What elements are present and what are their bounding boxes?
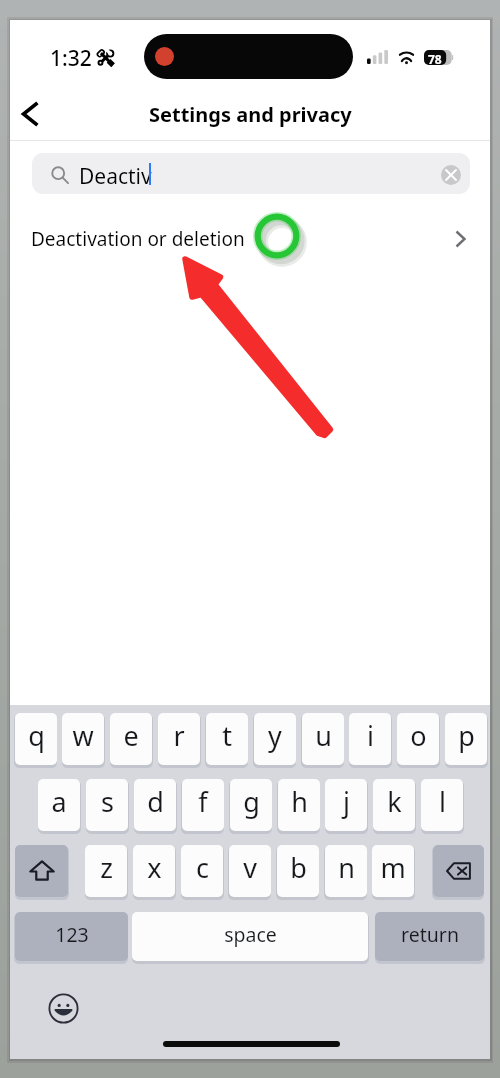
button[interactable]: f xyxy=(182,779,224,831)
button[interactable]: b xyxy=(277,845,319,897)
button[interactable]: h xyxy=(278,779,320,831)
button[interactable]: r xyxy=(158,713,200,765)
button[interactable]: Emoji keyboard xyxy=(48,993,79,1024)
button[interactable]: k xyxy=(373,779,415,831)
staticText: o xyxy=(410,717,427,754)
button[interactable]: d xyxy=(134,779,176,831)
staticText: h xyxy=(291,783,308,820)
staticText: f xyxy=(198,783,208,820)
staticText: c xyxy=(196,849,209,886)
staticText: return xyxy=(401,921,459,948)
button[interactable]: u xyxy=(302,713,344,765)
button[interactable]: space xyxy=(132,912,368,961)
staticText: 78 xyxy=(428,51,442,66)
button[interactable]: o xyxy=(397,713,439,765)
button[interactable]: q xyxy=(15,713,57,765)
staticText: r xyxy=(173,717,185,754)
staticText: v xyxy=(243,849,257,886)
staticText: g xyxy=(243,783,260,820)
button[interactable]: l xyxy=(421,779,463,831)
staticText: y xyxy=(268,717,282,754)
button[interactable]: j xyxy=(325,779,367,831)
button[interactable]: v xyxy=(229,845,271,897)
staticText: w xyxy=(72,717,94,754)
staticText: i xyxy=(367,717,374,754)
button[interactable]: return xyxy=(375,912,484,961)
staticText: j xyxy=(343,783,350,820)
staticText: 123 xyxy=(55,921,89,948)
staticText: p xyxy=(458,717,475,754)
button[interactable]: c xyxy=(181,845,223,897)
button[interactable]: z xyxy=(85,845,127,897)
button[interactable]: g xyxy=(230,779,272,831)
button[interactable]: t xyxy=(206,713,248,765)
staticText: d xyxy=(147,783,164,820)
staticText: u xyxy=(315,717,332,754)
button[interactable]: Back xyxy=(14,92,60,138)
staticText: b xyxy=(290,849,307,886)
staticText: x xyxy=(147,849,162,886)
staticText: 1:32 xyxy=(50,44,92,73)
staticText: Deactiv xyxy=(79,162,152,191)
button[interactable]: Clear search xyxy=(441,165,461,185)
button[interactable]: e xyxy=(110,713,152,765)
button[interactable]: x xyxy=(133,845,175,897)
staticText: Settings and privacy xyxy=(149,101,352,127)
staticText: s xyxy=(101,783,114,820)
staticText: Deactivation or deletion xyxy=(31,226,245,252)
staticText: l xyxy=(439,783,446,820)
button[interactable]: Shift xyxy=(15,845,68,897)
button[interactable]: Backspace xyxy=(433,845,484,897)
button[interactable]: n xyxy=(325,845,367,897)
button[interactable]: Deactiv xyxy=(32,153,470,194)
button[interactable]: m xyxy=(372,845,414,897)
staticText: k xyxy=(387,783,402,820)
staticText: t xyxy=(222,717,232,754)
button[interactable]: p xyxy=(445,713,487,765)
button[interactable]: i xyxy=(349,713,391,765)
staticText: m xyxy=(380,849,406,886)
staticText: n xyxy=(338,849,355,886)
button[interactable]: w xyxy=(62,713,104,765)
button[interactable]: Deactivation or deletion xyxy=(10,212,490,266)
staticText: a xyxy=(51,783,67,820)
staticText: q xyxy=(28,717,45,754)
staticText: z xyxy=(100,849,113,886)
button[interactable]: s xyxy=(86,779,128,831)
staticText: e xyxy=(123,717,139,754)
button[interactable]: a xyxy=(38,779,80,831)
staticText: space xyxy=(224,921,277,948)
button[interactable]: y xyxy=(254,713,296,765)
button[interactable]: 123 xyxy=(15,912,128,961)
